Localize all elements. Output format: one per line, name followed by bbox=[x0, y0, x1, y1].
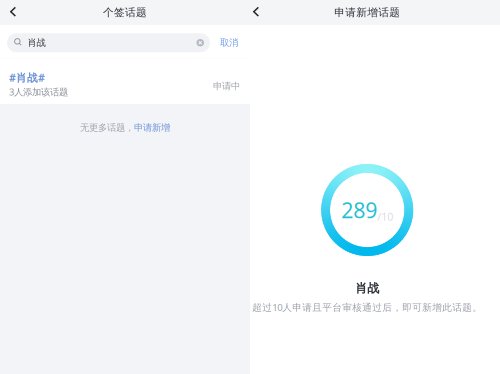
staticText: 申请新增 bbox=[134, 122, 170, 133]
button[interactable]: Back bbox=[0, 2, 28, 23]
staticText: #肖战# bbox=[9, 70, 45, 85]
staticText: 肖战 bbox=[355, 281, 379, 296]
staticText: 肖战 bbox=[27, 37, 45, 48]
staticText: 申请中 bbox=[213, 80, 240, 92]
button[interactable]: 取消 bbox=[210, 33, 248, 52]
button[interactable]: 申请新增 bbox=[134, 122, 170, 133]
staticText: 3人添加该话题 bbox=[9, 86, 68, 98]
button[interactable]: Clear search text bbox=[194, 36, 206, 49]
staticText: 申请新增话题 bbox=[334, 6, 400, 19]
staticText: 无更多话题， bbox=[80, 122, 134, 133]
button[interactable]: #肖战# bbox=[0, 58, 250, 104]
staticText: /10 bbox=[377, 209, 393, 224]
staticText: 超过10人申请且平台审核通过后，即可新增此话题。 bbox=[252, 301, 482, 314]
staticText: 取消 bbox=[220, 37, 238, 48]
button[interactable]: Back bbox=[250, 2, 271, 23]
staticText: 289 bbox=[341, 196, 377, 224]
staticText: 个签话题 bbox=[103, 6, 147, 19]
